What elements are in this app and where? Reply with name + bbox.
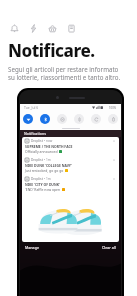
other: Expand notification <box>112 139 116 143</box>
button[interactable]: Quick setting toggle <box>57 114 67 124</box>
button[interactable]: Droplist <box>22 175 119 194</box>
button[interactable]: Droplist <box>22 156 119 175</box>
button[interactable]: Manage <box>25 245 39 250</box>
button[interactable]: Quick setting toggle <box>91 114 101 124</box>
staticText: Just restocked, go go go <box>25 168 64 173</box>
staticText: Droplist <box>31 139 43 143</box>
staticText: Tue, Jul 6 <box>24 105 39 110</box>
staticText: Notificare. <box>8 39 95 62</box>
staticText: • 1m <box>44 177 51 181</box>
other: Expand notification <box>112 158 116 162</box>
staticText: • now <box>44 139 53 143</box>
staticText: Clear all <box>102 245 116 250</box>
staticText: NIKE DUNK 'COLLEGE NAVY' <box>25 163 72 168</box>
button[interactable]: Droplist <box>22 137 119 156</box>
other: Expand notification <box>112 177 116 181</box>
staticText: • 1m <box>44 158 51 162</box>
staticText: NIKE 'CITY OF DUNK' <box>25 182 60 187</box>
button[interactable]: Quick setting toggle <box>74 114 84 124</box>
staticText: Droplist <box>31 177 43 181</box>
button[interactable]: Quick setting toggle <box>40 114 50 124</box>
staticText: Segui gli articoli per restare informato… <box>8 65 121 81</box>
staticText: Manage <box>25 245 39 250</box>
staticText: 'END' Raffle now open <box>25 187 61 192</box>
staticText: SUPREME / THE NORTH FACE <box>25 144 73 149</box>
staticText: Notifications <box>24 131 46 136</box>
staticText: Officially announced <box>25 149 58 154</box>
button[interactable]: Quick setting toggle <box>23 114 33 124</box>
button[interactable]: Quick setting toggle <box>108 114 118 124</box>
staticText: Droplist <box>31 158 43 162</box>
staticText: 100% <box>109 106 117 110</box>
button[interactable]: Clear all <box>102 245 116 250</box>
